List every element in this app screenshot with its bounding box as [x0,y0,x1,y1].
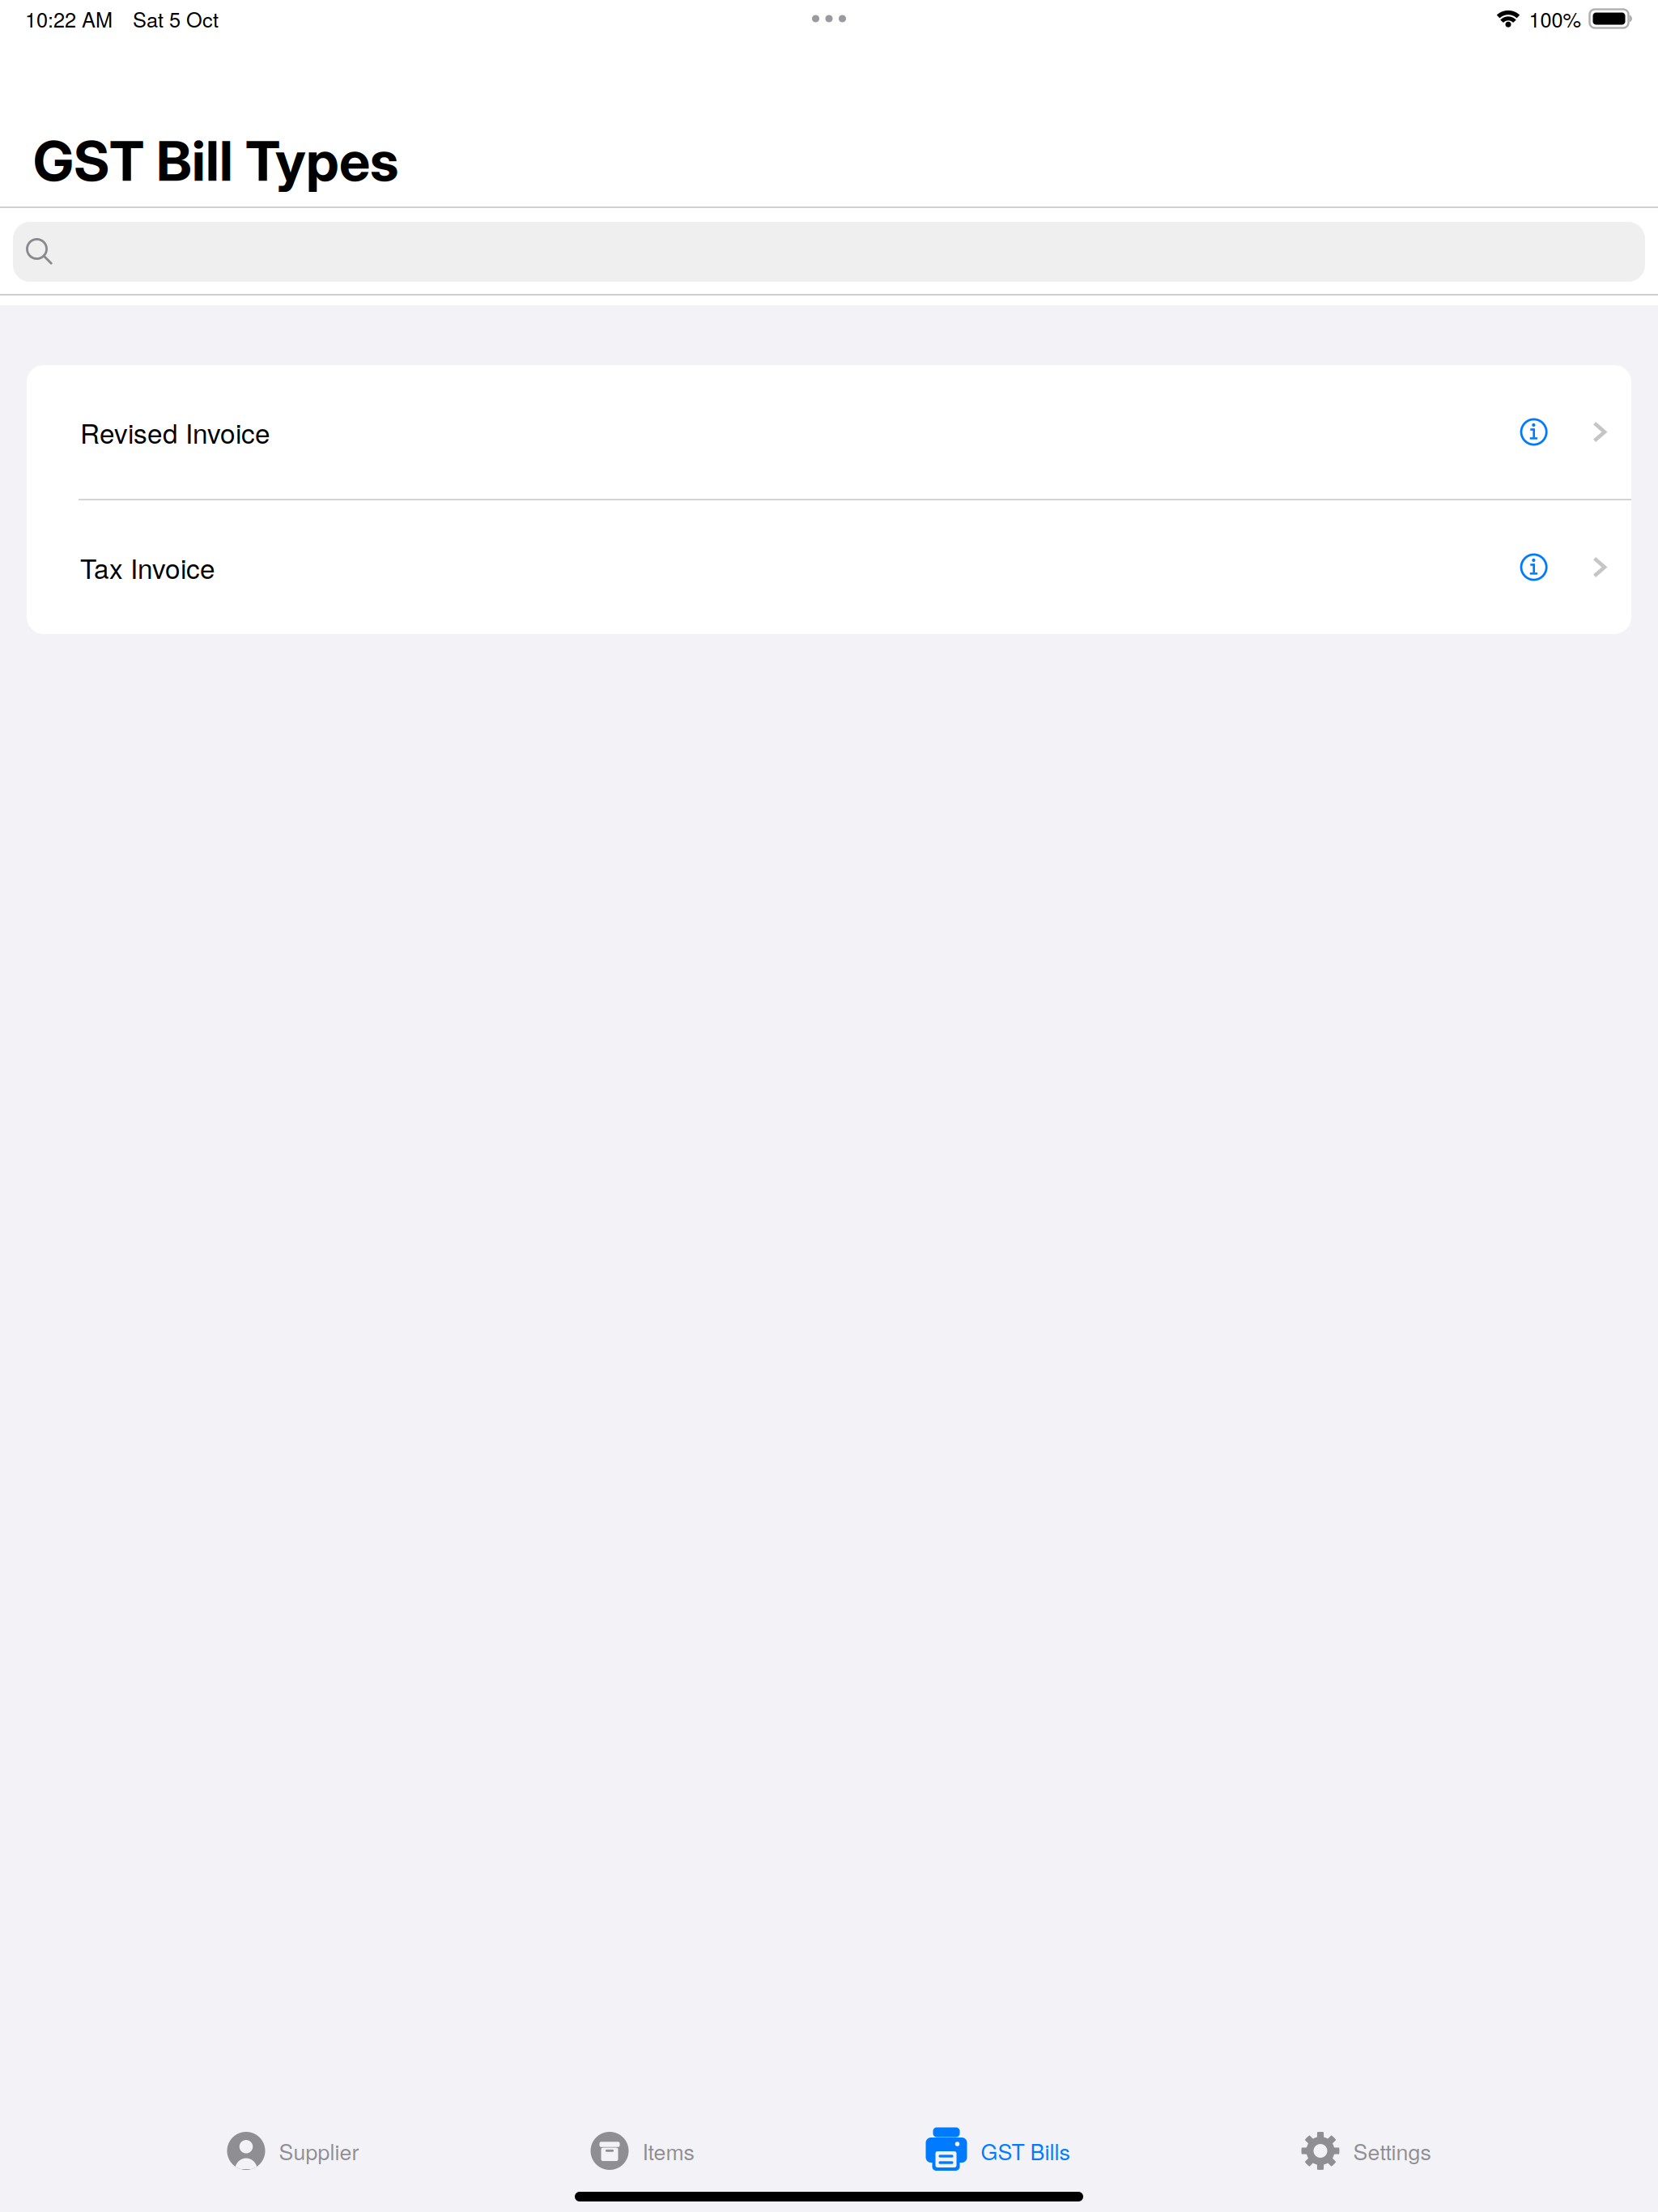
button[interactable]: GST Bills [911,2109,1084,2187]
button[interactable]: Supplier [213,2109,374,2187]
staticText: Items [642,2135,694,2166]
button[interactable]: Settings [1287,2109,1445,2187]
staticText: Tax Invoice [80,548,215,586]
button[interactable]: Search [13,222,1645,282]
staticText: 10:22 AM [25,4,113,33]
staticText: GST Bill Types [33,127,398,194]
staticText: Supplier [279,2135,359,2166]
staticText: GST Bills [981,2135,1070,2166]
button[interactable]: Revised Invoice [27,365,1631,499]
staticText: 100% [1529,4,1581,33]
button[interactable]: Tax Invoice [27,500,1631,634]
staticText: Sat 5 Oct [133,4,219,33]
staticText: Revised Invoice [80,413,270,451]
button[interactable]: Items [576,2109,709,2187]
staticText: Settings [1353,2135,1431,2166]
